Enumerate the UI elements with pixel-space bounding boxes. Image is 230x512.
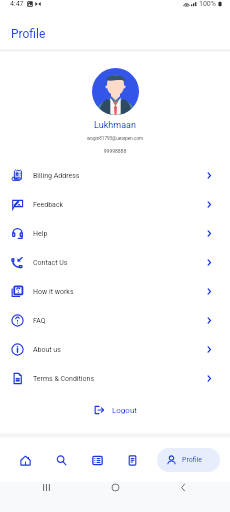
staticText: Profile — [11, 27, 46, 41]
button[interactable]: Profile — [157, 448, 220, 472]
button[interactable]: Orders — [86, 449, 108, 471]
staticText: FAQ — [33, 317, 46, 325]
staticText: Billing Address — [33, 172, 80, 180]
button[interactable]: Search — [50, 449, 72, 471]
staticText: wogin81793@uearpen.com — [0, 136, 230, 141]
staticText: Logout — [112, 406, 137, 415]
staticText: Terms & Conditions — [33, 375, 95, 383]
staticText: About us — [33, 346, 61, 354]
staticText: 99998888 — [0, 148, 230, 154]
staticText: Contact Us — [33, 259, 68, 267]
button[interactable]: How it works — [0, 277, 230, 306]
staticText: Feedback — [33, 201, 64, 209]
staticText: 100% — [199, 0, 216, 8]
button[interactable]: Documents — [121, 449, 143, 471]
button[interactable]: Home — [14, 449, 36, 471]
button[interactable]: FAQ — [0, 306, 230, 335]
button[interactable]: Contact Us — [0, 248, 230, 277]
staticText: Lukhmaan — [0, 120, 230, 131]
button[interactable]: Feedback — [0, 190, 230, 219]
button[interactable]: Logout — [85, 401, 145, 419]
staticText: Profile — [182, 456, 203, 464]
button[interactable]: Terms & Conditions — [0, 364, 230, 393]
button[interactable]: Billing Address — [0, 161, 230, 190]
staticText: How it works — [33, 288, 74, 296]
staticText: 4:47 — [10, 0, 24, 8]
button[interactable]: About us — [0, 335, 230, 364]
button[interactable]: Help — [0, 219, 230, 248]
staticText: Help — [33, 230, 48, 238]
